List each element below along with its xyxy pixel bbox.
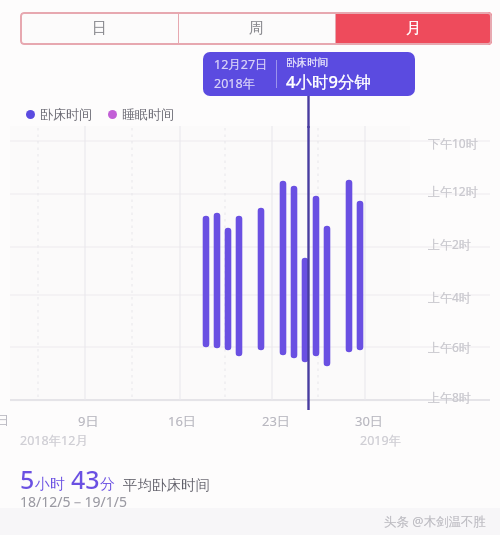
staticText: 平均卧床时间 xyxy=(123,476,210,494)
staticText: 43 xyxy=(71,462,100,496)
staticText: 日 xyxy=(0,412,9,428)
staticText: 卧床时间 xyxy=(286,56,328,69)
staticText: 分 xyxy=(100,475,115,494)
staticText: 小时 xyxy=(35,475,65,494)
staticText: 上午6时 xyxy=(428,339,471,355)
staticText: 上午4时 xyxy=(428,289,471,305)
button[interactable]: 卧床时间 xyxy=(26,106,92,122)
button[interactable]: 12月27日 xyxy=(203,52,415,96)
button[interactable]: 5 xyxy=(20,462,210,496)
staticText: 30日 xyxy=(355,412,383,430)
staticText: 18/12/5－19/1/5 xyxy=(20,492,127,511)
staticText: 2019年 xyxy=(360,432,402,449)
staticText: 日 xyxy=(92,19,107,38)
staticText: 睡眠时间 xyxy=(122,106,174,122)
staticText: 4小时9分钟 xyxy=(286,70,371,93)
staticText: 卧床时间 xyxy=(40,106,92,122)
button[interactable]: 月 xyxy=(335,12,492,45)
staticText: 上午2时 xyxy=(428,236,471,252)
staticText: 头条 @木剑温不胜 xyxy=(384,513,486,530)
staticText: 16日 xyxy=(168,412,196,430)
button[interactable]: 睡眠时间 xyxy=(108,106,174,122)
button[interactable]: 日 xyxy=(20,12,178,45)
staticText: 月 xyxy=(406,19,421,38)
staticText: 上午8时 xyxy=(428,389,471,405)
staticText: 12月27日 xyxy=(214,56,268,73)
staticText: 9日 xyxy=(78,412,99,430)
staticText: 2018年 xyxy=(214,75,256,92)
staticText: 2018年12月 xyxy=(20,432,88,449)
staticText: 下午10时 xyxy=(428,135,478,151)
staticText: 5 xyxy=(20,462,35,496)
staticText: 周 xyxy=(249,19,264,38)
staticText: 上午12时 xyxy=(428,183,478,199)
staticText: 23日 xyxy=(262,412,290,430)
button[interactable]: 周 xyxy=(178,12,335,45)
